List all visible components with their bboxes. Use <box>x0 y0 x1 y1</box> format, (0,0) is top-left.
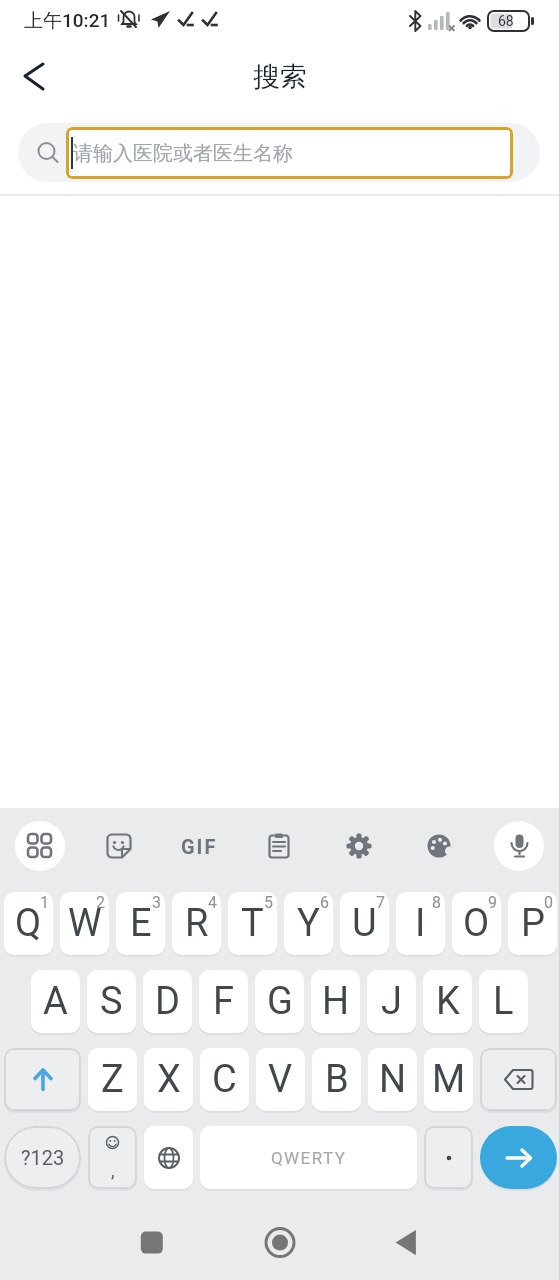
staticText: H <box>322 979 350 1024</box>
staticText: 7 <box>376 893 385 912</box>
staticText: E <box>130 901 152 946</box>
staticText: 4 <box>208 893 217 912</box>
staticText: 3 <box>152 893 161 912</box>
staticText: 9 <box>488 893 497 912</box>
staticText: B <box>325 1057 349 1102</box>
staticText: Y <box>297 901 320 946</box>
staticText: T <box>241 901 264 946</box>
staticText: W <box>68 901 102 946</box>
staticText: , <box>111 1160 115 1181</box>
staticText: R <box>185 901 209 946</box>
staticText: I <box>415 901 426 946</box>
staticText: L <box>493 979 514 1024</box>
staticText: Z <box>101 1057 124 1102</box>
staticText: 0 <box>544 893 553 912</box>
staticText: U <box>352 901 377 946</box>
staticText: 2 <box>96 893 105 912</box>
staticText: O <box>463 901 490 946</box>
staticText: 请输入医院或者医生名称 <box>73 141 293 166</box>
staticText: V <box>268 1057 293 1102</box>
staticText: ?123 <box>21 1146 65 1169</box>
staticText: Q <box>15 901 42 946</box>
staticText: GIF <box>181 835 218 858</box>
staticText: 上午10:21 <box>24 9 111 33</box>
staticText: P <box>521 901 545 946</box>
staticText: F <box>213 979 235 1024</box>
staticText: M <box>432 1057 466 1102</box>
staticText: 8 <box>432 893 441 912</box>
staticText: 搜索 <box>253 60 307 94</box>
staticText: K <box>436 979 460 1024</box>
staticText: G <box>267 979 293 1024</box>
staticText: D <box>155 979 180 1024</box>
staticText: QWERTY <box>271 1148 347 1168</box>
staticText: J <box>381 979 402 1024</box>
staticText: A <box>43 979 68 1024</box>
staticText: 1 <box>40 893 49 912</box>
staticText: N <box>379 1057 407 1102</box>
staticText: X <box>157 1057 181 1102</box>
staticText: 6 <box>320 893 329 912</box>
staticText: 68 <box>498 13 514 29</box>
staticText: 5 <box>264 893 273 912</box>
staticText: S <box>100 979 123 1024</box>
staticText: C <box>212 1057 237 1102</box>
